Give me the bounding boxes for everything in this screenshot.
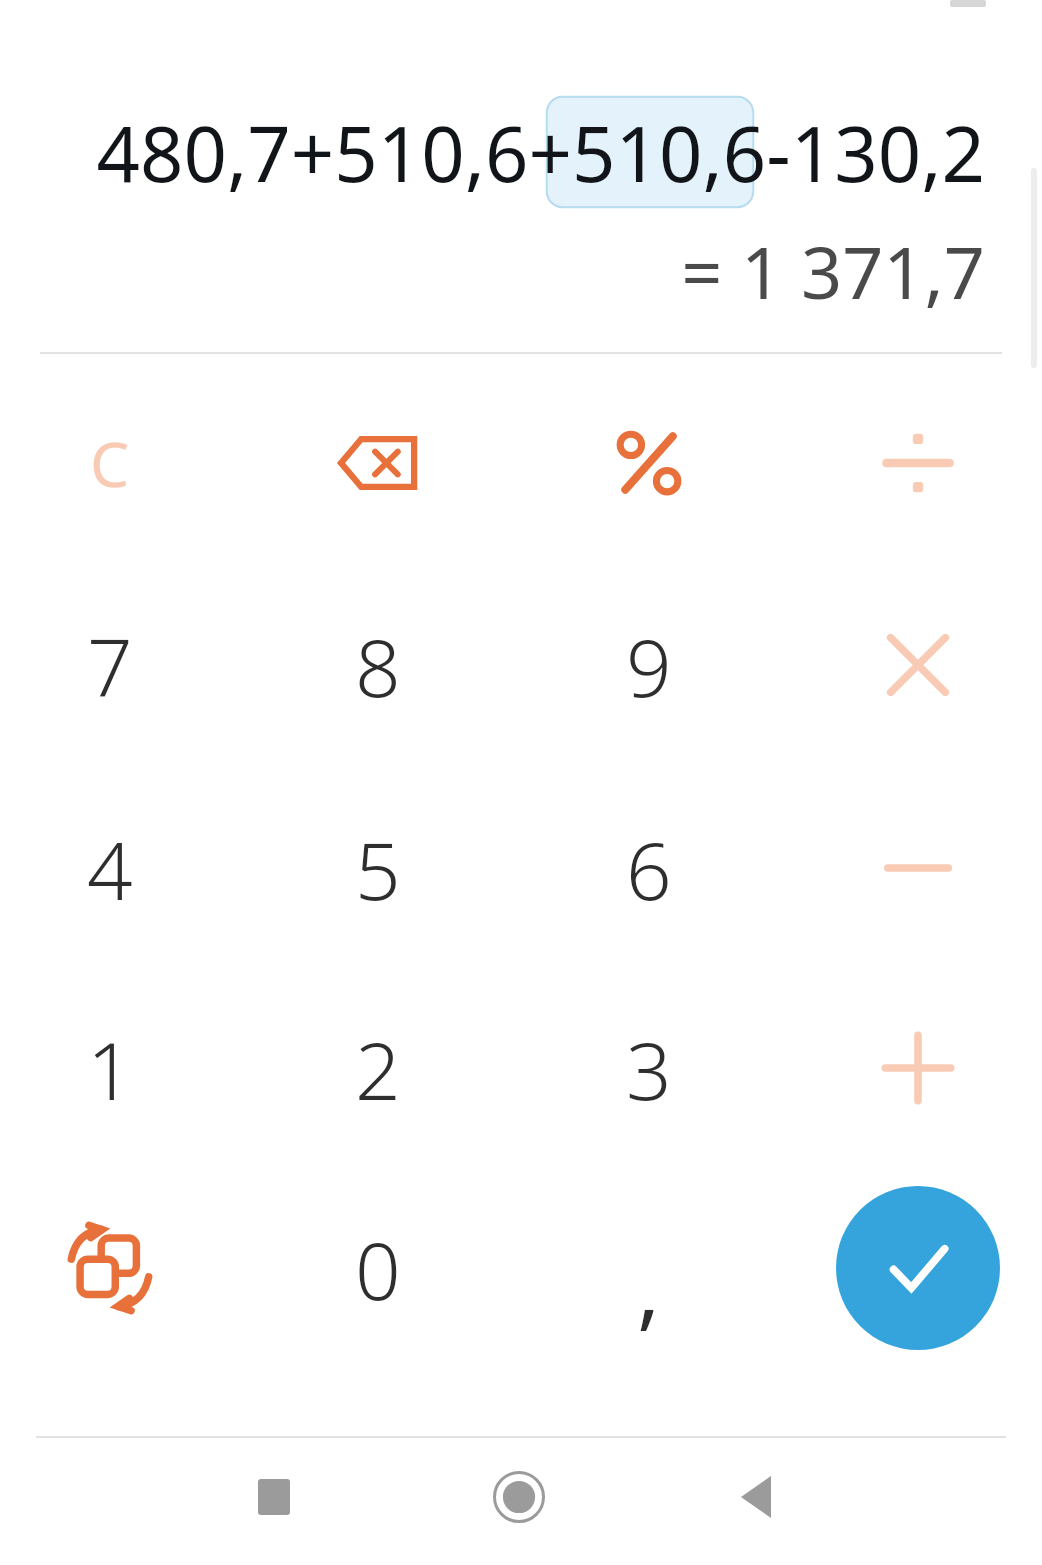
button[interactable]: 480,7+510,6+510,6-130,2 [40, 100, 985, 206]
button[interactable]: Recent apps [214, 1437, 334, 1557]
button[interactable]: 6 [549, 776, 749, 960]
button[interactable]: Percent [549, 371, 749, 555]
staticText: 7 [87, 611, 133, 720]
button[interactable]: 2 [278, 976, 478, 1160]
staticText: 4 [87, 814, 133, 923]
button[interactable]: 1 [10, 976, 210, 1160]
button[interactable]: 5 [278, 776, 478, 960]
staticText: , [637, 1228, 661, 1345]
staticText: 9 [626, 611, 672, 720]
button[interactable]: Multiply [818, 573, 1018, 757]
staticText: 3 [626, 1014, 672, 1123]
button[interactable]: 0 [278, 1176, 478, 1360]
staticText: 0 [355, 1214, 401, 1323]
button[interactable]: Decimal comma [549, 1194, 749, 1378]
button[interactable]: 3 [549, 976, 749, 1160]
button[interactable]: 7 [10, 573, 210, 757]
button[interactable]: 4 [10, 776, 210, 960]
staticText: 480,7+510,6+510,6-130,2 [96, 101, 985, 205]
staticText: 2 [355, 1014, 401, 1123]
staticText: 1 [87, 1014, 133, 1123]
button[interactable]: Home [459, 1437, 579, 1557]
button[interactable]: = 1 371,7 [40, 222, 985, 318]
button[interactable]: Minus [818, 776, 1018, 960]
button[interactable]: Back [696, 1437, 816, 1557]
staticText: C [90, 421, 130, 505]
staticText: 8 [355, 611, 401, 720]
button[interactable]: Equals [836, 1186, 1000, 1350]
button[interactable]: Clear [10, 371, 210, 555]
staticText: = 1 371,7 [681, 222, 985, 318]
button[interactable]: 8 [278, 573, 478, 757]
button[interactable]: Plus [818, 976, 1018, 1160]
button[interactable]: Convert units [10, 1176, 210, 1360]
button[interactable]: Backspace [278, 371, 478, 555]
staticText: 5 [355, 814, 401, 923]
staticText: 6 [626, 814, 672, 923]
button[interactable]: Divide [818, 371, 1018, 555]
button[interactable]: 9 [549, 573, 749, 757]
